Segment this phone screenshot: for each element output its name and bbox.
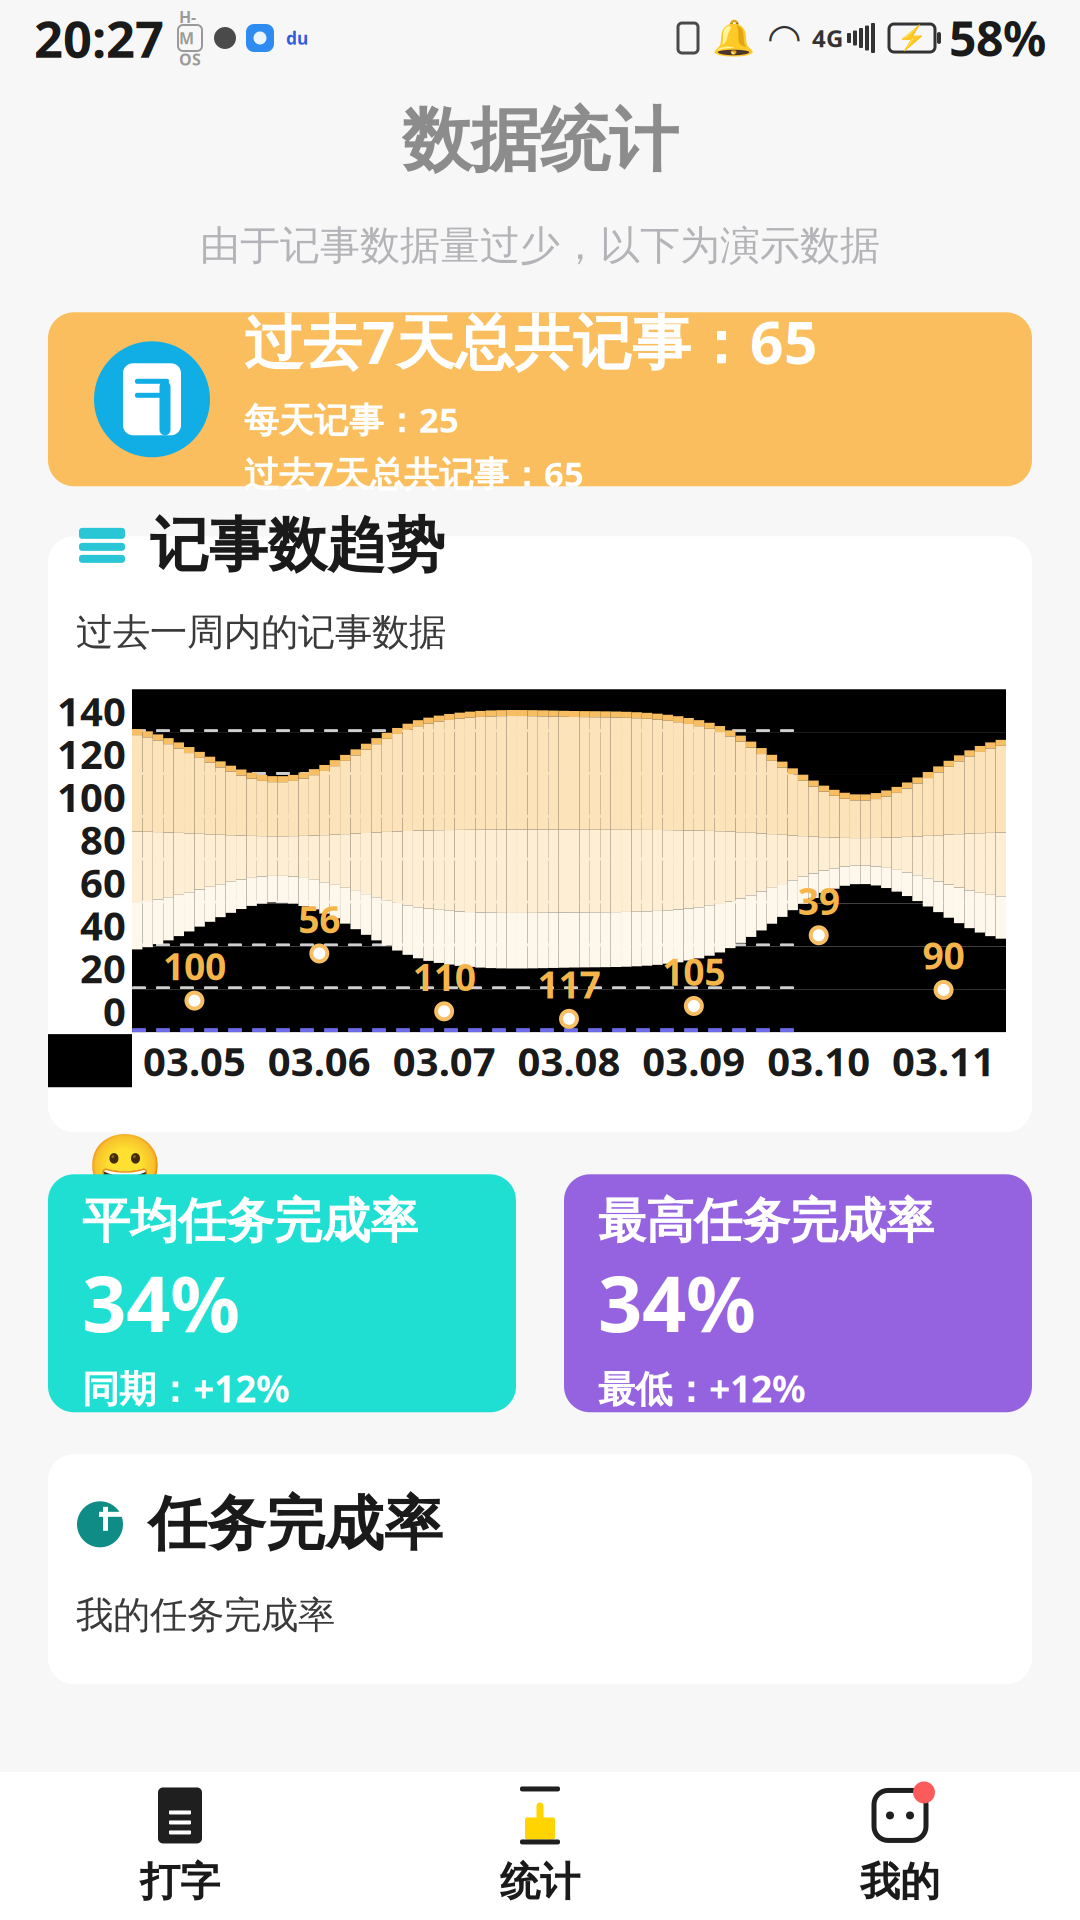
staticText: 统计 (500, 1857, 580, 1906)
staticText: 03.05 (143, 1034, 246, 1087)
button[interactable]: 统计 (360, 1769, 720, 1920)
staticText: 😀 (87, 1131, 163, 1201)
button[interactable]: 打字 (0, 1769, 360, 1920)
staticText: 34% (82, 1251, 240, 1353)
staticText: 我的任务完成率 (76, 1592, 335, 1638)
staticText: 记事数趋势 (150, 509, 445, 581)
staticText: 20:27 (34, 4, 164, 72)
staticText: 0 (103, 984, 126, 1037)
staticText: 90 (923, 930, 965, 980)
staticText: 100 (57, 770, 126, 823)
staticText: 03.09 (642, 1034, 745, 1087)
staticText: 20 (80, 941, 126, 994)
staticText: 过去7天总共记事：65 (244, 450, 584, 496)
staticText: 每天记事：25 (244, 396, 459, 442)
staticText: 40 (80, 898, 126, 951)
staticText: 34% (598, 1251, 756, 1353)
button[interactable]: 最高任务完成率 (564, 1174, 1032, 1412)
button[interactable]: 平均任务完成率 (48, 1174, 516, 1412)
staticText: 最高任务完成率 (598, 1192, 934, 1251)
staticText: 由于记事数据量过少，以下为演示数据 (200, 221, 880, 270)
staticText: 我的 (860, 1857, 940, 1906)
staticText: 120 (57, 727, 126, 780)
staticText: 60 (80, 856, 126, 909)
staticText: 105 (662, 946, 725, 996)
staticText: 03.11 (892, 1034, 995, 1087)
staticText: ⚡ (897, 24, 927, 52)
staticText: 4G (812, 22, 843, 54)
button[interactable]: 过去7天总共记事：65 (48, 312, 1032, 486)
staticText: 117 (537, 959, 600, 1009)
staticText: HM OS (179, 6, 201, 70)
staticText: 39 (798, 876, 840, 925)
staticText: 同期：+12% (82, 1363, 290, 1413)
staticText: 03.06 (268, 1034, 371, 1087)
staticText: 03.10 (767, 1034, 870, 1087)
staticText: 58% (949, 6, 1046, 70)
staticText: 03.08 (517, 1034, 620, 1087)
staticText: 56 (298, 894, 340, 943)
staticText: 100 (163, 941, 226, 991)
staticText: 140 (57, 684, 126, 737)
staticText: 最低：+12% (598, 1363, 806, 1413)
staticText: du (286, 26, 308, 49)
staticText: 过去7天总共记事：65 (244, 302, 818, 380)
staticText: 🔔 (712, 18, 755, 58)
staticText: 打字 (140, 1857, 220, 1906)
staticText: 任务完成率 (148, 1488, 443, 1560)
staticText: ◠ (769, 15, 800, 61)
staticText: 过去一周内的记事数据 (76, 609, 446, 655)
staticText: 数据统计 (402, 98, 678, 183)
staticText: 80 (80, 813, 126, 866)
staticText: 平均任务完成率 (82, 1192, 418, 1251)
button[interactable]: 我的 (720, 1769, 1080, 1920)
staticText: 03.07 (393, 1034, 496, 1087)
staticText: 110 (413, 952, 476, 1001)
